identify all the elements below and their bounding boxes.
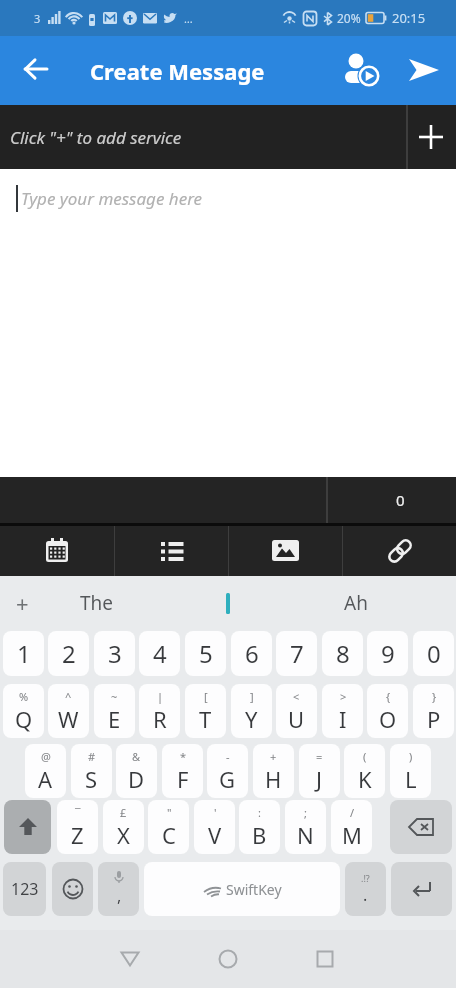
button[interactable]: " — [148, 800, 189, 854]
staticText: Z — [71, 820, 84, 850]
button[interactable]: 5 — [185, 631, 226, 676]
staticText: " — [167, 805, 172, 820]
button[interactable]: | — [139, 684, 180, 738]
staticText: Create Message — [90, 56, 265, 86]
button[interactable] — [178, 576, 278, 630]
staticText: 20:15 — [392, 9, 426, 27]
button[interactable]: % — [3, 684, 44, 738]
button[interactable]: ( — [344, 744, 385, 798]
button[interactable]: 123 — [3, 862, 46, 916]
button[interactable]: & — [116, 744, 157, 798]
staticText: … — [184, 11, 193, 26]
staticText: S — [85, 764, 98, 794]
button[interactable]: @ — [25, 744, 66, 798]
button[interactable]: SwiftKey — [144, 862, 340, 916]
staticText: E — [108, 704, 121, 734]
staticText: V — [208, 820, 222, 850]
button[interactable]: 9 — [367, 631, 408, 676]
button[interactable] — [200, 931, 256, 987]
button[interactable]: 1 — [3, 631, 44, 676]
button[interactable]: Ah — [306, 576, 406, 630]
button[interactable]: 8 — [322, 631, 363, 676]
button[interactable] — [229, 526, 342, 576]
button[interactable]: < — [276, 684, 317, 738]
staticText: ; — [304, 805, 307, 820]
button[interactable]: : — [239, 800, 280, 854]
button[interactable]: ¯ — [57, 800, 98, 854]
button[interactable] — [297, 931, 353, 987]
button[interactable]: ~ — [94, 684, 135, 738]
staticText: O — [379, 704, 397, 734]
staticText: > — [340, 689, 347, 704]
button[interactable]: # — [71, 744, 112, 798]
staticText: ¯ — [75, 805, 81, 820]
staticText: Y — [245, 704, 258, 734]
button[interactable] — [390, 800, 452, 854]
button[interactable] — [0, 526, 114, 576]
staticText: P — [427, 704, 441, 734]
staticText: U — [288, 704, 305, 734]
button[interactable] — [52, 862, 93, 916]
button[interactable]: + — [253, 744, 294, 798]
button[interactable]: 0 — [413, 631, 454, 676]
staticText: ~ — [111, 689, 118, 704]
staticText: ) — [409, 749, 413, 764]
button[interactable] — [391, 862, 452, 916]
staticText: & — [132, 749, 141, 764]
staticText: W — [58, 704, 79, 734]
button[interactable]: - — [207, 744, 248, 798]
button[interactable]: ' — [194, 800, 235, 854]
button[interactable]: ] — [231, 684, 272, 738]
staticText: L — [405, 764, 417, 794]
button[interactable]: Click "+" to add service — [0, 105, 456, 169]
button[interactable]: £ — [103, 800, 144, 854]
staticText: + — [16, 588, 29, 618]
button[interactable]: = — [299, 744, 340, 798]
staticText: 123 — [11, 878, 39, 900]
button[interactable] — [12, 47, 60, 95]
button[interactable]: + — [2, 576, 42, 630]
button[interactable]: 3 — [94, 631, 135, 676]
button[interactable]: ; — [285, 800, 326, 854]
staticText: : — [258, 805, 261, 820]
staticText: 4 — [153, 637, 167, 670]
button[interactable]: 6 — [231, 631, 272, 676]
staticText: Ah — [344, 590, 368, 616]
button[interactable]: } — [413, 684, 454, 738]
button[interactable] — [4, 800, 51, 854]
button[interactable]: 7 — [276, 631, 317, 676]
staticText: D — [128, 764, 145, 794]
button[interactable]: 4 — [139, 631, 180, 676]
button[interactable]: * — [162, 744, 203, 798]
button[interactable] — [343, 526, 456, 576]
button[interactable] — [115, 526, 228, 576]
staticText: 2 — [62, 637, 76, 670]
button[interactable]: ^ — [48, 684, 89, 738]
staticText: [ — [204, 689, 208, 704]
staticText: N — [297, 820, 314, 850]
staticText: Q — [15, 704, 33, 734]
button[interactable]: ) — [390, 744, 431, 798]
staticText: The — [80, 590, 114, 616]
button[interactable]: { — [367, 684, 408, 738]
button[interactable]: 2 — [48, 631, 89, 676]
button[interactable] — [338, 47, 386, 95]
button[interactable]: [ — [185, 684, 226, 738]
staticText: @ — [41, 749, 51, 764]
staticText: ] — [250, 689, 254, 704]
staticText: = — [316, 749, 323, 764]
button[interactable] — [102, 931, 158, 987]
button[interactable]: The — [47, 576, 147, 630]
button[interactable]: > — [322, 684, 363, 738]
button[interactable]: .!? — [345, 862, 386, 916]
button[interactable]: / — [331, 800, 372, 854]
staticText: - — [226, 749, 230, 764]
staticText: 3 — [108, 637, 122, 670]
button[interactable] — [400, 47, 448, 95]
staticText: 6 — [245, 637, 259, 670]
button[interactable]: , — [98, 862, 139, 916]
staticText: 1 — [17, 637, 31, 670]
button[interactable]: Type your message here — [0, 169, 456, 477]
staticText: } — [432, 689, 437, 704]
staticText: X — [117, 820, 130, 850]
